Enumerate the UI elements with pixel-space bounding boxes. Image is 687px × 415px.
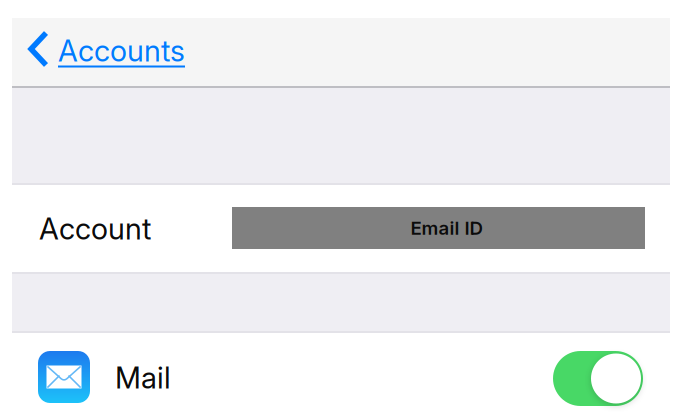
staticText: Mail — [115, 360, 171, 395]
staticText: Accounts — [58, 33, 185, 68]
button[interactable]: Email ID — [232, 207, 645, 249]
staticText: Account — [39, 211, 151, 246]
button[interactable]: Accounts — [28, 25, 198, 75]
button[interactable]: Mail — [553, 351, 643, 406]
staticText: Email ID — [410, 217, 482, 239]
